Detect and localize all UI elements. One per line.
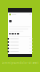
staticText: Lorem ipsum dolor sit amet bbox=[1, 61, 38, 65]
